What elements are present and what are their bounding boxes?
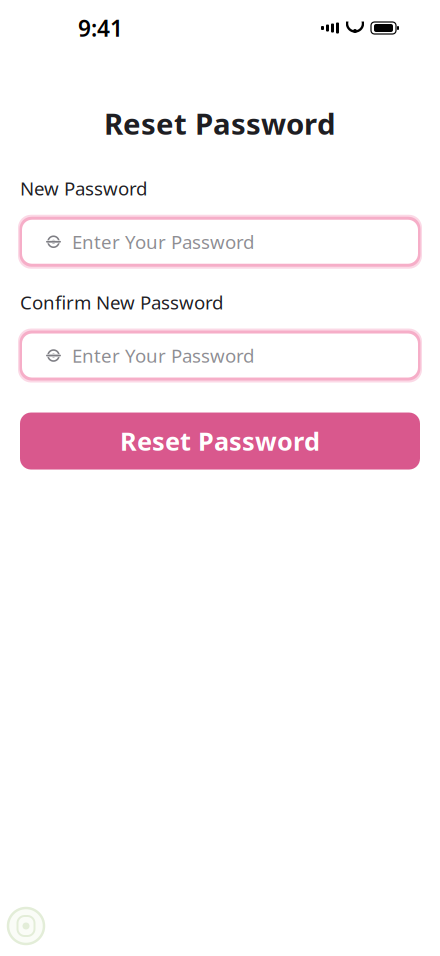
- button[interactable]: Enter Your Password: [15, 327, 425, 383]
- staticText: Reset Password: [104, 104, 336, 143]
- staticText: Confirm New Password: [20, 290, 223, 314]
- button[interactable]: Enter Your Password: [15, 214, 425, 270]
- button[interactable]: Reset Password: [20, 412, 420, 469]
- staticText: Reset Password: [120, 424, 320, 458]
- staticText: Enter Your Password: [72, 229, 254, 254]
- staticText: 9:41: [78, 13, 123, 43]
- staticText: Enter Your Password: [72, 343, 254, 368]
- staticText: New Password: [20, 176, 147, 201]
